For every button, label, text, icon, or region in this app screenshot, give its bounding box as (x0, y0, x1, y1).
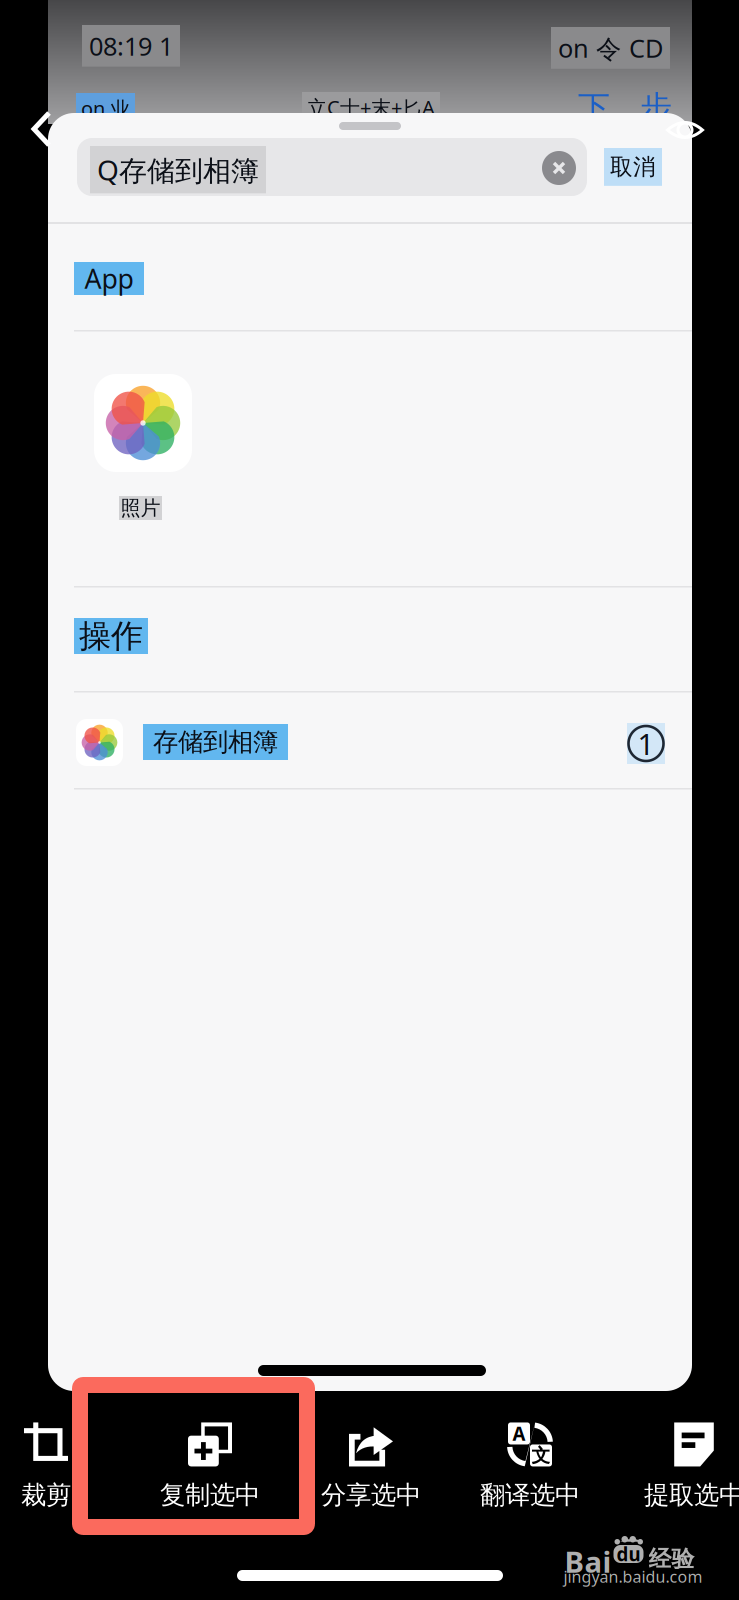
staticText: jingyan.baidu.com (563, 1566, 702, 1587)
staticText: 下 步 (578, 88, 672, 127)
button[interactable]: 裁剪 (0, 1417, 126, 1517)
staticText: 复制选中 (160, 1479, 260, 1510)
staticText: 提取选中 (644, 1479, 739, 1510)
button[interactable]: 存储到相簿 (48, 691, 692, 788)
staticText: 08:19 1 (89, 29, 173, 63)
staticText: 取消 (610, 153, 656, 181)
staticText: 存储到相簿 (153, 726, 278, 757)
staticText: A (512, 1421, 525, 1446)
button[interactable]: Preview (666, 118, 704, 142)
staticText: App (84, 261, 133, 296)
staticText: 经验 (648, 1545, 694, 1573)
staticText: du (616, 1542, 640, 1566)
button[interactable]: 复制选中 (130, 1417, 290, 1517)
button[interactable]: Back (32, 111, 52, 147)
button[interactable]: 分享选中 (291, 1417, 451, 1517)
staticText: 文 (531, 1444, 550, 1467)
staticText: Q存储到相簿 (97, 151, 259, 188)
button[interactable]: 操作 (74, 618, 148, 654)
button[interactable]: 取消 (604, 148, 662, 186)
staticText: 立C士+末+匕A (307, 94, 435, 121)
staticText: 1 (637, 724, 654, 763)
staticText: on 业 (81, 95, 130, 122)
button[interactable]: 照片 (94, 374, 264, 534)
staticText: 分享选中 (321, 1479, 421, 1510)
staticText: 操作 (79, 616, 143, 656)
staticText: 翻译选中 (480, 1479, 580, 1510)
button[interactable]: 提取选中 (614, 1417, 739, 1517)
staticText: 裁剪 (21, 1479, 71, 1510)
staticText: Bai (564, 1542, 611, 1581)
staticText: on 令 CD (558, 31, 663, 65)
button[interactable]: A (450, 1417, 610, 1517)
button[interactable]: App (74, 262, 144, 295)
staticText: 照片 (120, 496, 160, 520)
